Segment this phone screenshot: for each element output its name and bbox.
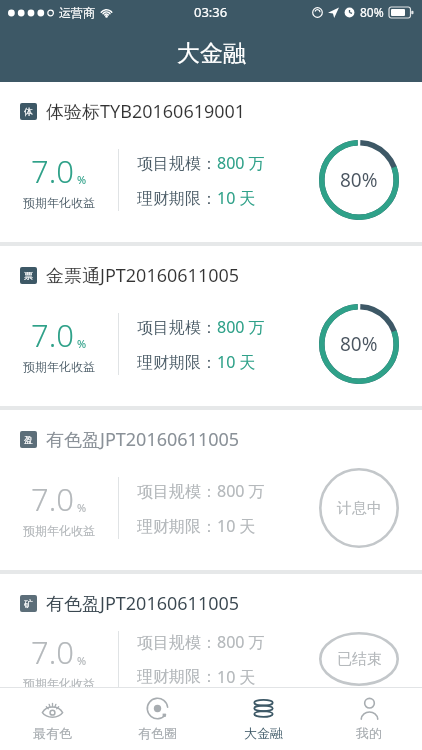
staticText: 800 万 (217, 316, 265, 338)
staticText: 10 天 (217, 187, 256, 209)
staticText: 10 天 (217, 666, 256, 687)
staticText: 80% (340, 167, 378, 193)
button[interactable]: 最有色 (0, 688, 105, 750)
staticText: 金票通JPT20160611005 (46, 263, 240, 288)
staticText: 7.0 (31, 314, 74, 356)
staticText: 项目规模： (137, 154, 217, 174)
button[interactable]: 体 (0, 82, 422, 242)
staticText: % (77, 500, 87, 515)
staticText: % (77, 336, 87, 351)
other: 大金融 (252, 697, 275, 720)
staticText: 10 天 (217, 351, 256, 373)
staticText: 800 万 (217, 152, 265, 174)
staticText: 理财期限： (137, 353, 217, 373)
button[interactable]: 大金融 (210, 688, 316, 750)
staticText: 80% (360, 4, 384, 20)
other: 最有色 (41, 697, 64, 720)
staticText: 800 万 (217, 480, 265, 502)
button[interactable]: 票 (0, 246, 422, 406)
staticText: 有色盈JPT20160611005 (46, 427, 240, 452)
staticText: 800 万 (217, 631, 265, 653)
staticText: 10 天 (217, 515, 256, 537)
staticText: 体 (24, 106, 33, 117)
staticText: 项目规模： (137, 318, 217, 338)
staticText: 理财期限： (137, 517, 217, 537)
staticText: 预期年化收益 (23, 523, 95, 538)
staticText: 7.0 (31, 631, 74, 673)
staticText: 项目规模： (137, 482, 217, 502)
staticText: % (77, 653, 87, 668)
staticText: 理财期限： (137, 189, 217, 209)
staticText: 预期年化收益 (23, 195, 95, 210)
other: 有色圈 (146, 697, 169, 720)
staticText: 体验标TYB20160619001 (46, 99, 246, 124)
staticText: 最有色 (33, 725, 72, 741)
staticText: 7.0 (31, 478, 74, 520)
staticText: 理财期限： (137, 667, 217, 687)
staticText: 03:36 (194, 3, 228, 21)
staticText: 已结束 (337, 650, 382, 669)
staticText: 矿 (24, 598, 33, 609)
button[interactable]: 我的 (316, 688, 422, 750)
staticText: 盈 (24, 434, 33, 445)
staticText: 项目规模： (137, 633, 217, 653)
staticText: 票 (24, 270, 33, 281)
button[interactable]: 有色圈 (105, 688, 210, 750)
staticText: 预期年化收益 (23, 359, 95, 374)
other: 我的 (358, 697, 381, 720)
staticText: 计息中 (337, 499, 382, 518)
staticText: 7.0 (31, 150, 74, 192)
staticText: 预期年化收益 (23, 676, 95, 687)
staticText: 我的 (356, 725, 382, 741)
staticText: 有色盈JPT20160611005 (46, 591, 240, 616)
staticText: % (77, 172, 87, 187)
staticText: 80% (340, 331, 378, 357)
button[interactable]: 矿 (0, 574, 422, 687)
button[interactable]: 盈 (0, 410, 422, 570)
staticText: 运营商 (59, 5, 95, 20)
staticText: 大金融 (177, 39, 246, 68)
staticText: 有色圈 (138, 725, 177, 741)
staticText: 大金融 (244, 725, 283, 741)
